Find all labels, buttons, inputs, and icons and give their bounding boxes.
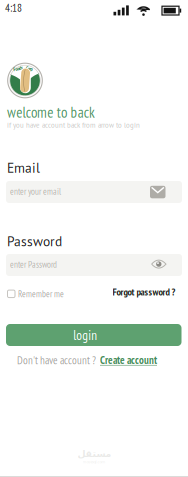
staticText: مستقل xyxy=(77,448,111,459)
staticText: if you have account back from arrow to l… xyxy=(7,119,140,130)
staticText: Foods xyxy=(13,65,23,72)
staticText: Password xyxy=(7,232,62,250)
staticText: welcome to back xyxy=(7,102,95,122)
staticText: Don't have account ? xyxy=(17,353,96,367)
button[interactable]: Show password xyxy=(151,259,167,269)
button[interactable]: login xyxy=(6,324,181,346)
staticText: enter your email xyxy=(10,185,61,197)
staticText: Email xyxy=(7,159,40,176)
staticText: enter Password xyxy=(10,258,57,270)
staticText: Create account xyxy=(100,353,157,367)
staticText: 4:18 xyxy=(5,0,22,15)
staticText: Corp xyxy=(26,65,33,72)
staticText: mostaql.com xyxy=(82,459,105,464)
button[interactable]: Remember me xyxy=(7,288,64,300)
button[interactable]: Create account xyxy=(100,353,157,367)
staticText: Remember me xyxy=(18,288,64,300)
staticText: Forgot password ? xyxy=(112,285,175,298)
staticText: login xyxy=(73,327,97,344)
button[interactable]: Forgot password ? xyxy=(112,285,175,298)
